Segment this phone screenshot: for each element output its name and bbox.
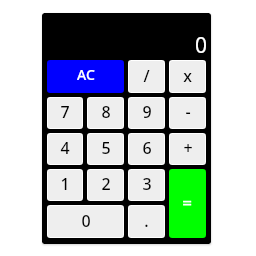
staticText: 7: [60, 101, 70, 123]
staticText: .: [144, 210, 149, 232]
staticText: =: [182, 191, 192, 214]
staticText: 5: [101, 137, 111, 159]
staticText: AC: [77, 65, 95, 84]
button[interactable]: Equals: [170, 170, 205, 237]
staticText: /: [143, 65, 150, 87]
staticText: -: [185, 101, 191, 123]
button[interactable]: 3: [129, 170, 164, 200]
button[interactable]: Minus: [170, 98, 205, 128]
staticText: 3: [142, 173, 152, 195]
staticText: +: [183, 137, 193, 159]
button[interactable]: 4: [48, 134, 82, 164]
staticText: 0: [194, 31, 207, 60]
staticText: 0: [81, 210, 91, 232]
button[interactable]: 0: [48, 206, 123, 237]
button[interactable]: 2: [88, 170, 123, 200]
button[interactable]: All clear: [48, 61, 123, 92]
button[interactable]: 1: [48, 170, 82, 200]
staticText: x: [183, 65, 192, 87]
button[interactable]: 8: [88, 98, 123, 128]
button[interactable]: Plus: [170, 134, 205, 164]
button[interactable]: 5: [88, 134, 123, 164]
staticText: 8: [101, 101, 111, 123]
staticText: 1: [60, 173, 70, 195]
button[interactable]: Decimal point: [129, 206, 164, 237]
staticText: 2: [101, 173, 111, 195]
button[interactable]: 7: [48, 98, 82, 128]
staticText: 9: [142, 101, 152, 123]
button[interactable]: Divide: [129, 61, 164, 92]
button[interactable]: Multiply: [170, 61, 205, 92]
button[interactable]: 9: [129, 98, 164, 128]
staticText: 4: [60, 137, 70, 159]
staticText: 6: [142, 137, 152, 159]
button[interactable]: 6: [129, 134, 164, 164]
